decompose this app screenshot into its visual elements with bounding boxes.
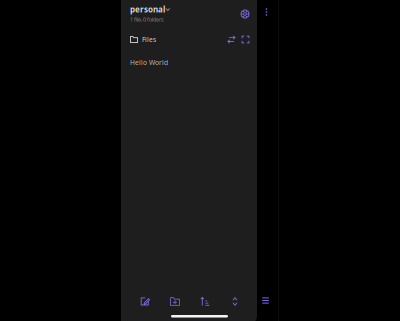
button[interactable]: Collapse all xyxy=(220,293,250,309)
button[interactable]: Files xyxy=(121,31,156,48)
button[interactable]: Sync xyxy=(224,32,238,46)
button[interactable]: More options xyxy=(261,8,272,16)
button[interactable]: New note xyxy=(130,293,160,309)
staticText: personal xyxy=(130,4,165,15)
staticText: Files xyxy=(142,35,156,44)
button[interactable]: Hello World xyxy=(121,55,257,70)
button[interactable]: New folder xyxy=(160,293,190,309)
staticText: 1 file, 0 folders xyxy=(130,16,164,23)
button[interactable]: Expand all xyxy=(238,32,252,46)
button[interactable]: Open navigation xyxy=(260,297,271,304)
staticText: Hello World xyxy=(130,58,168,67)
button[interactable]: Change sort order xyxy=(190,293,220,309)
button[interactable]: Settings xyxy=(236,5,254,23)
